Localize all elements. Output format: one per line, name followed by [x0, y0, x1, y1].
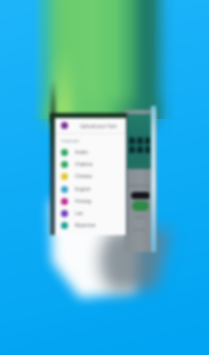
staticText: Lao [75, 210, 83, 216]
button[interactable]: Chakma [55, 158, 126, 170]
staticText: Chakma [75, 161, 93, 167]
staticText: Languages [61, 138, 80, 143]
staticText: English [75, 186, 91, 192]
staticText: Arabic [75, 149, 89, 155]
other: Upload your font [61, 122, 68, 129]
button[interactable]: Myanmar [55, 219, 126, 231]
staticText: Hmong [75, 198, 92, 204]
button[interactable]: Lao [55, 207, 126, 219]
button[interactable]: Chinese [55, 170, 126, 182]
staticText: Myanmar [75, 222, 96, 228]
button[interactable]: Upload your font [55, 119, 126, 132]
button[interactable]: Hmong [55, 195, 126, 207]
button[interactable]: Arabic [55, 146, 126, 158]
button[interactable]: English [55, 183, 126, 195]
staticText: Chinese [75, 173, 93, 179]
staticText: Install this font [128, 184, 151, 188]
staticText: Upload your font [80, 123, 117, 129]
